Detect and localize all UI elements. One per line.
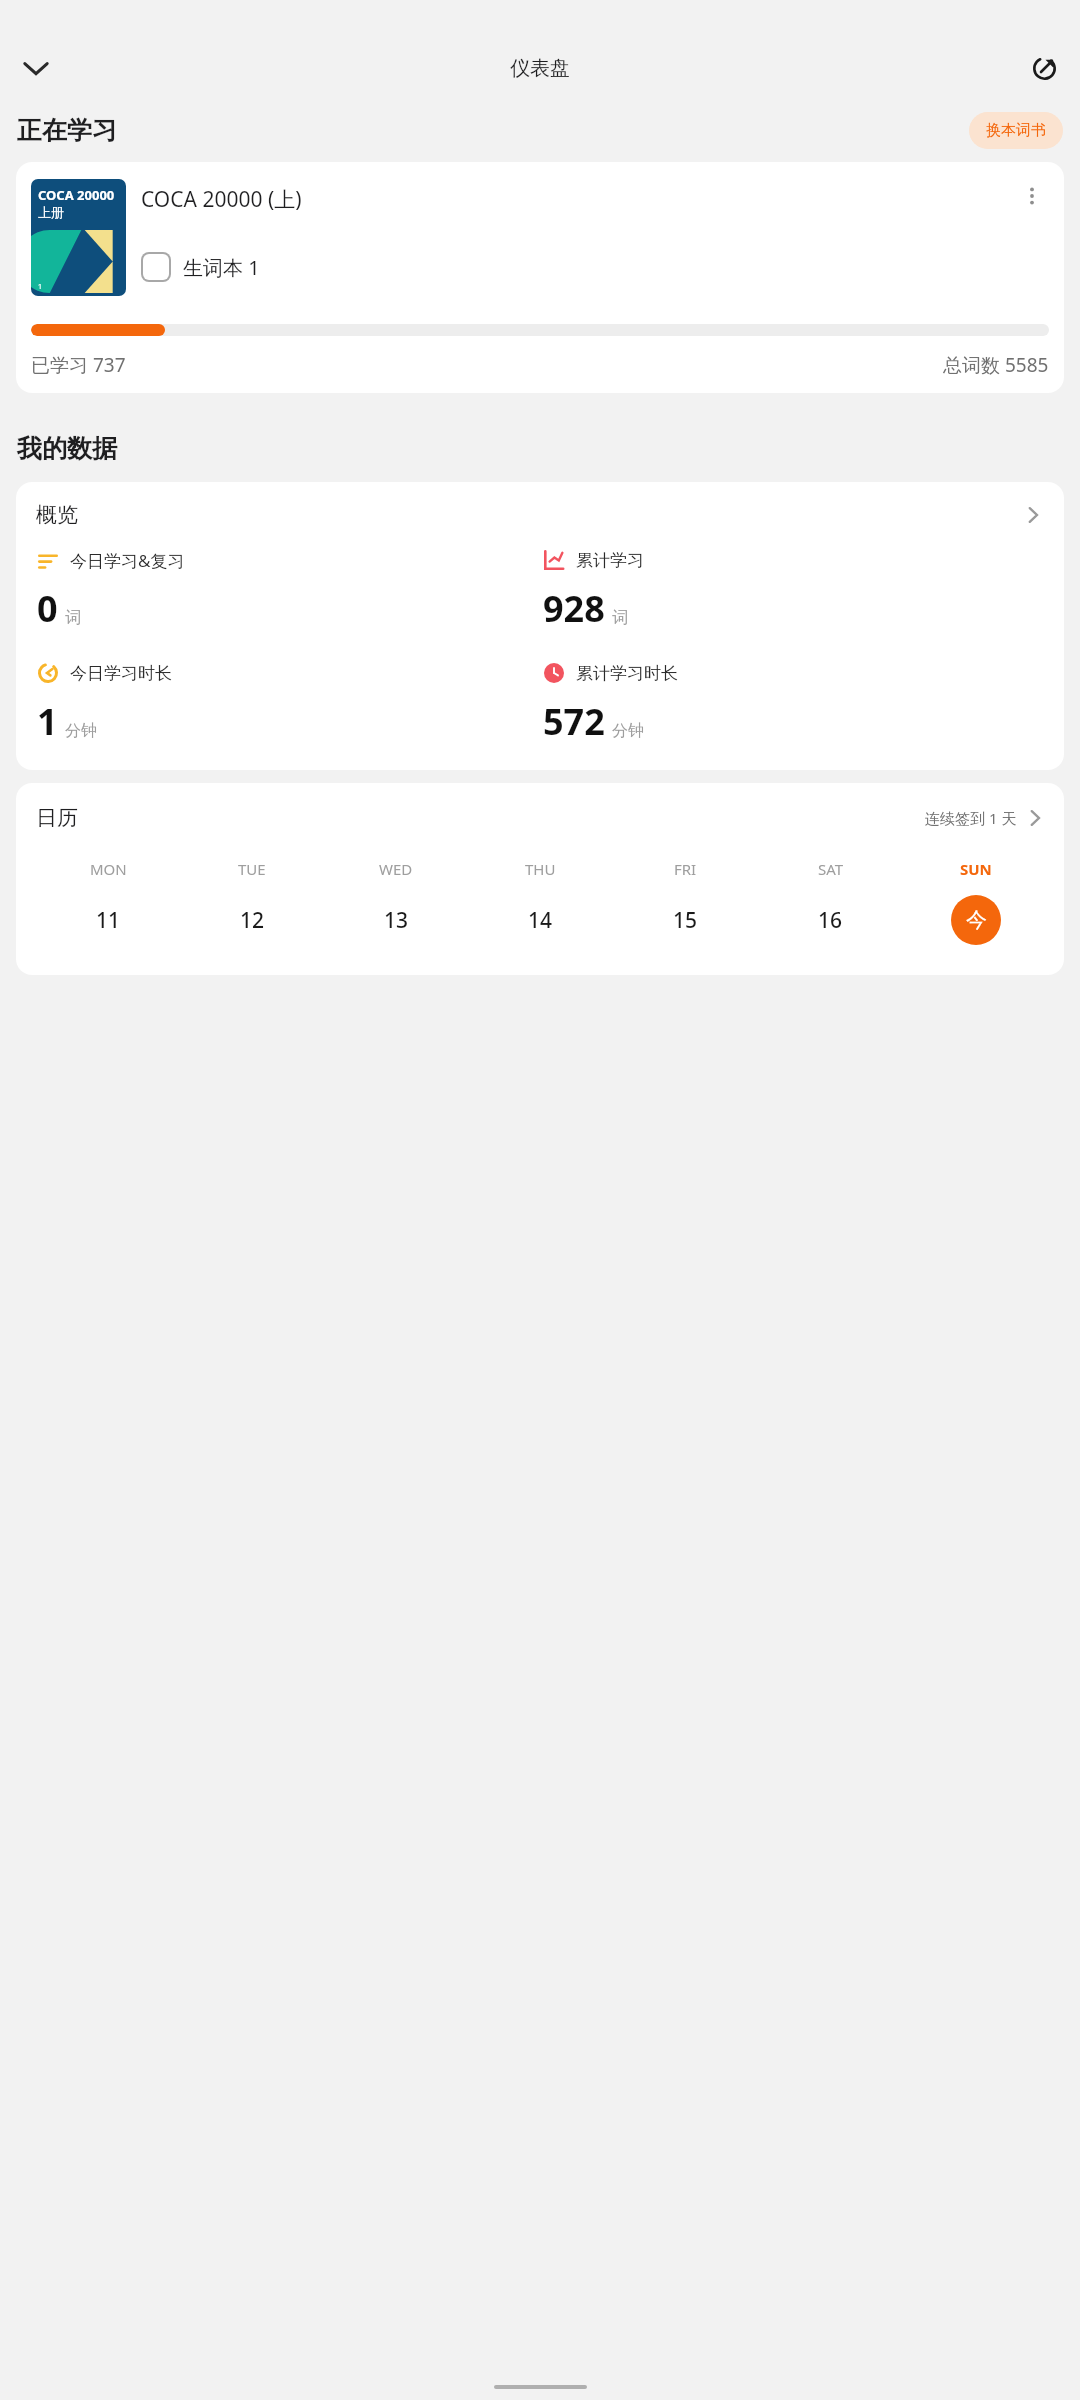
staticText: 总词数 5585: [943, 352, 1049, 378]
button[interactable]: 13: [324, 895, 468, 945]
staticText: FRI: [674, 859, 697, 879]
staticText: 生词本 1: [183, 254, 260, 281]
button[interactable]: 11: [36, 895, 180, 945]
staticText: 今: [966, 907, 987, 933]
button[interactable]: 累计学习: [542, 548, 1048, 633]
staticText: 15: [673, 906, 698, 935]
staticText: 正在学习: [17, 115, 117, 146]
button[interactable]: 今日学习&复习: [36, 548, 542, 633]
staticText: 12: [240, 906, 265, 935]
staticText: 今日学习&复习: [70, 549, 185, 572]
staticText: 词: [65, 608, 81, 628]
staticText: THU: [525, 859, 556, 879]
button[interactable]: 15: [613, 895, 758, 945]
staticText: 词: [612, 608, 628, 628]
button[interactable]: Share: [1022, 46, 1066, 90]
staticText: 分钟: [612, 721, 644, 741]
staticText: 14: [528, 906, 553, 935]
button[interactable]: 14: [468, 895, 613, 945]
staticText: COCA 20000 (上): [141, 185, 1015, 214]
staticText: 16: [818, 906, 843, 935]
button[interactable]: 今: [951, 895, 1001, 945]
staticText: COCA 20000: [38, 186, 115, 204]
staticText: 累计学习时长: [576, 663, 678, 684]
staticText: 累计学习: [576, 550, 644, 571]
button[interactable]: More options: [1015, 179, 1049, 213]
staticText: MON: [90, 859, 127, 879]
staticText: WED: [379, 859, 413, 879]
button[interactable]: 16: [758, 895, 903, 945]
staticText: 11: [96, 906, 121, 935]
staticText: TUE: [238, 859, 266, 879]
button[interactable]: 概览: [36, 502, 1048, 528]
staticText: 换本词书: [986, 121, 1046, 140]
staticText: 连续签到 1 天: [925, 808, 1017, 828]
staticText: 分钟: [65, 721, 97, 741]
button[interactable]: 今日学习时长: [36, 661, 542, 746]
staticText: 572: [543, 697, 605, 746]
staticText: 1: [38, 282, 43, 292]
button[interactable]: 日历: [36, 805, 1048, 831]
staticText: 仪表盘: [510, 56, 570, 81]
button[interactable]: 换本词书: [969, 112, 1063, 149]
button[interactable]: 累计学习时长: [542, 661, 1048, 746]
staticText: SAT: [818, 859, 844, 879]
button[interactable]: 12: [180, 895, 324, 945]
button[interactable]: 生词本 1: [141, 252, 260, 282]
staticText: 1: [37, 697, 58, 746]
button[interactable]: COCA 20000: [16, 162, 1064, 393]
staticText: 已学习 737: [31, 352, 126, 378]
staticText: 我的数据: [17, 433, 117, 464]
staticText: 0: [37, 584, 58, 633]
staticText: 日历: [36, 805, 78, 831]
staticText: 今日学习时长: [70, 663, 172, 684]
staticText: 928: [543, 584, 605, 633]
staticText: 13: [384, 906, 409, 935]
staticText: SUN: [960, 859, 992, 879]
staticText: 上册: [38, 204, 64, 220]
staticText: 概览: [36, 502, 78, 528]
button[interactable]: Collapse: [14, 46, 58, 90]
